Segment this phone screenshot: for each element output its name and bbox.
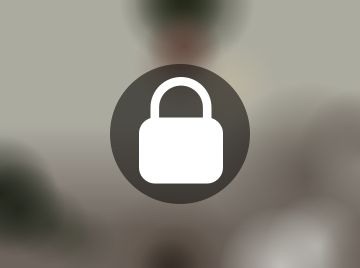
button[interactable]: Unlock <box>110 64 250 204</box>
